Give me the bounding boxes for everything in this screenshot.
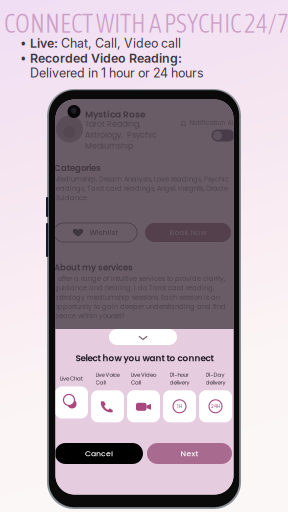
- staticText: Categories: [54, 162, 101, 174]
- staticText: Live Video Call: [131, 371, 156, 386]
- staticText: Wishlist: [89, 227, 118, 238]
- staticText: 01-hour delivery: [169, 371, 189, 386]
- staticText: •: [21, 36, 26, 52]
- staticText: 24H: [211, 403, 220, 410]
- staticText: Live Chat: [60, 375, 83, 382]
- staticText: Cancel: [85, 448, 113, 459]
- staticText: About my services: [54, 261, 133, 273]
- staticText: Mediumship, Dream Analysis, Love reading…: [54, 174, 229, 202]
- staticText: Next: [180, 448, 198, 459]
- staticText: Live Voice Call: [95, 371, 119, 386]
- staticText: Tarot Reading, Astrology, Psychic Medium…: [85, 118, 157, 151]
- staticText: Live: Chat, Call, Video call: [30, 36, 181, 51]
- staticText: Mystica Rose: [85, 108, 146, 121]
- staticText: 1H: [177, 403, 182, 410]
- staticText: Notification Alert: [189, 118, 241, 127]
- staticText: Book Now: [169, 227, 206, 238]
- staticText: •: [21, 51, 26, 67]
- staticText: 01-Day delivery: [205, 371, 225, 386]
- staticText: CONNECT WITH A PSYCHIC 24/7: [4, 9, 288, 38]
- staticText: Recorded Video Reading: Delivered in 1 h…: [30, 51, 204, 80]
- staticText: Select how you want to connect: [75, 352, 213, 364]
- staticText: I offer a range of intuitive services to…: [54, 274, 226, 321]
